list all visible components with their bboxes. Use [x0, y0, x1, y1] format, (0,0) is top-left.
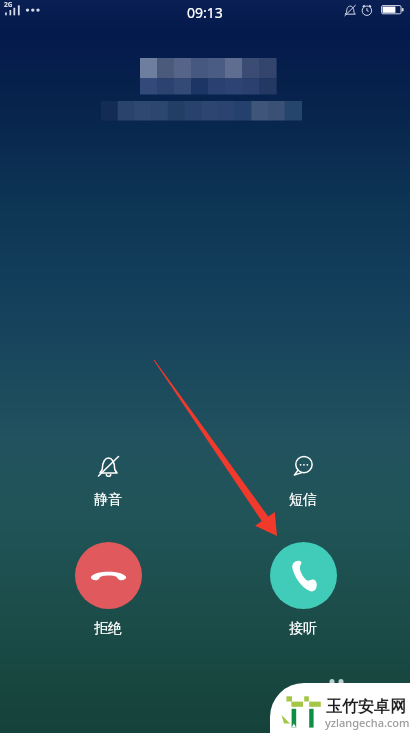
button[interactable]: 接听 — [269, 542, 337, 640]
staticText: 玉竹安卓网 — [326, 697, 406, 717]
staticText: 2G — [4, 0, 13, 9]
button[interactable]: 短信 — [271, 450, 335, 510]
staticText: 接听 — [289, 620, 317, 638]
button[interactable]: 静音 — [76, 450, 140, 510]
staticText: 拒绝 — [94, 620, 122, 638]
staticText: 09:13 — [187, 3, 223, 22]
staticText: 静音 — [94, 491, 122, 509]
staticText: yzlangecha.com — [325, 715, 410, 730]
staticText: 短信 — [289, 491, 317, 509]
button[interactable]: 拒绝 — [74, 542, 142, 640]
